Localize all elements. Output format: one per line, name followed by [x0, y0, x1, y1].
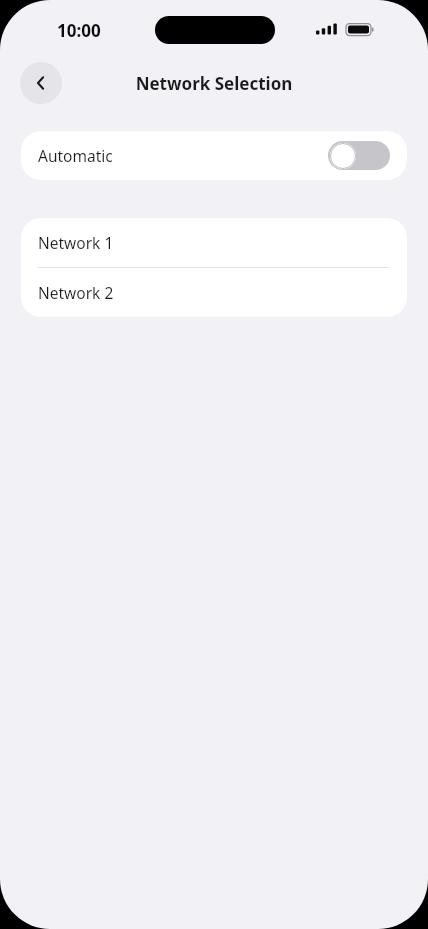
button[interactable]: Network 2 [21, 268, 407, 317]
button[interactable]: Network 1 [21, 218, 407, 267]
staticText: Network 2 [38, 282, 114, 303]
staticText: 10:00 [57, 19, 101, 42]
staticText: Network 1 [38, 232, 114, 253]
button[interactable]: Automatic [21, 131, 407, 180]
button[interactable]: Automatic toggle [328, 141, 390, 170]
button[interactable]: Back [20, 62, 62, 104]
staticText: Network Selection [0, 72, 428, 95]
staticText: Automatic [38, 145, 328, 166]
